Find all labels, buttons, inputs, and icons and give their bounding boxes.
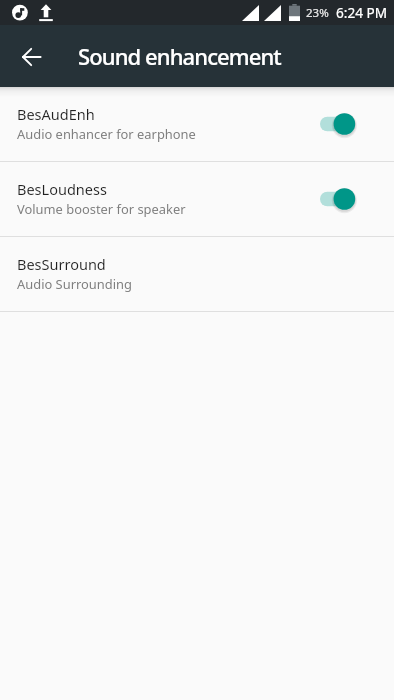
staticText: BesSurround (17, 254, 106, 274)
button[interactable]: BesAudEnh (0, 87, 394, 161)
staticText: BesAudEnh (17, 104, 95, 124)
staticText: BesLoudness (17, 179, 107, 199)
button[interactable]: BesLoudness (0, 162, 394, 236)
staticText: 6:24 PM (336, 3, 388, 22)
staticText: Audio enhancer for earphone (17, 125, 196, 143)
staticText: Sound enhancement (78, 41, 281, 71)
button[interactable]: Back (12, 36, 52, 76)
staticText: Audio Surrounding (17, 275, 132, 293)
staticText: Volume booster for speaker (17, 200, 186, 218)
button[interactable]: BesSurround (0, 237, 394, 311)
staticText: 23% (306, 5, 329, 21)
button[interactable]: Turn off (320, 104, 378, 144)
button[interactable]: Turn off (320, 179, 378, 219)
